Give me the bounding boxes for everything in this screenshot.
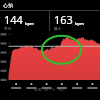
- button[interactable]: 心拍: [0, 0, 100, 10]
- staticText: bpm: [25, 21, 34, 26]
- staticText: 144: [4, 12, 23, 27]
- button[interactable]: [0, 31, 100, 88]
- staticText: 163: [54, 12, 73, 27]
- button[interactable]: 144: [0, 11, 49, 31]
- staticText: 最大: [54, 27, 61, 31]
- button[interactable]: 163: [50, 11, 100, 31]
- staticText: 心拍: [3, 2, 13, 8]
- staticText: bpm: [75, 21, 84, 26]
- staticText: 時間（時：分：秒）: [34, 88, 66, 92]
- staticText: 平均: [4, 27, 11, 31]
